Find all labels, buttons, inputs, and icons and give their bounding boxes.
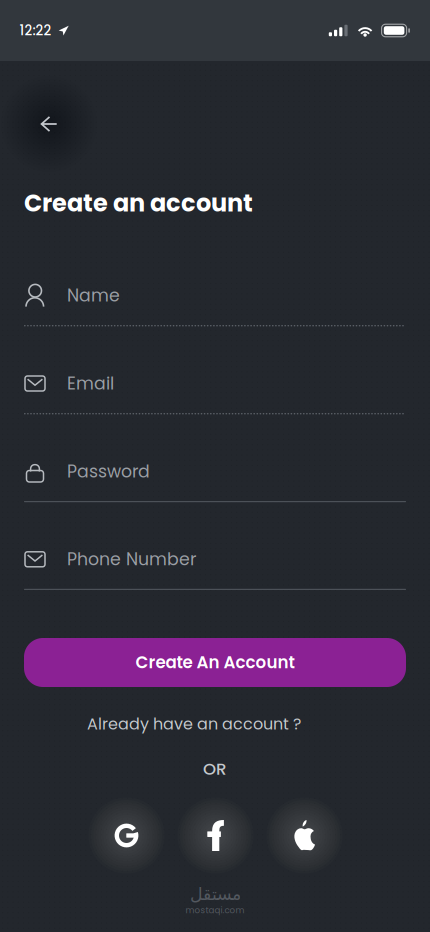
staticText: Already have an account ?	[87, 713, 301, 735]
staticText: Create An Account	[135, 651, 294, 674]
button[interactable]: Phone Number	[24, 532, 406, 590]
button[interactable]: Continue with Apple	[260, 791, 349, 880]
button[interactable]: Continue with Facebook	[171, 791, 260, 880]
staticText: Create an account	[24, 186, 253, 220]
staticText: Phone Number	[67, 547, 196, 571]
button[interactable]: Continue with Google	[82, 791, 171, 880]
button[interactable]: Name	[24, 268, 406, 326]
staticText: Name	[67, 283, 120, 308]
staticText: OR	[203, 757, 227, 781]
staticText: mostaqi.com	[185, 904, 244, 916]
button[interactable]: Already have an account ?	[72, 707, 316, 741]
staticText: Password	[67, 459, 150, 484]
staticText: Email	[67, 371, 114, 396]
button[interactable]: Password	[24, 444, 406, 502]
button[interactable]: Email	[24, 356, 406, 414]
staticText: 12:22	[19, 21, 51, 40]
button[interactable]: Create An Account	[24, 638, 406, 687]
staticText: مستقل	[189, 884, 240, 904]
button[interactable]: Back	[7, 82, 91, 166]
